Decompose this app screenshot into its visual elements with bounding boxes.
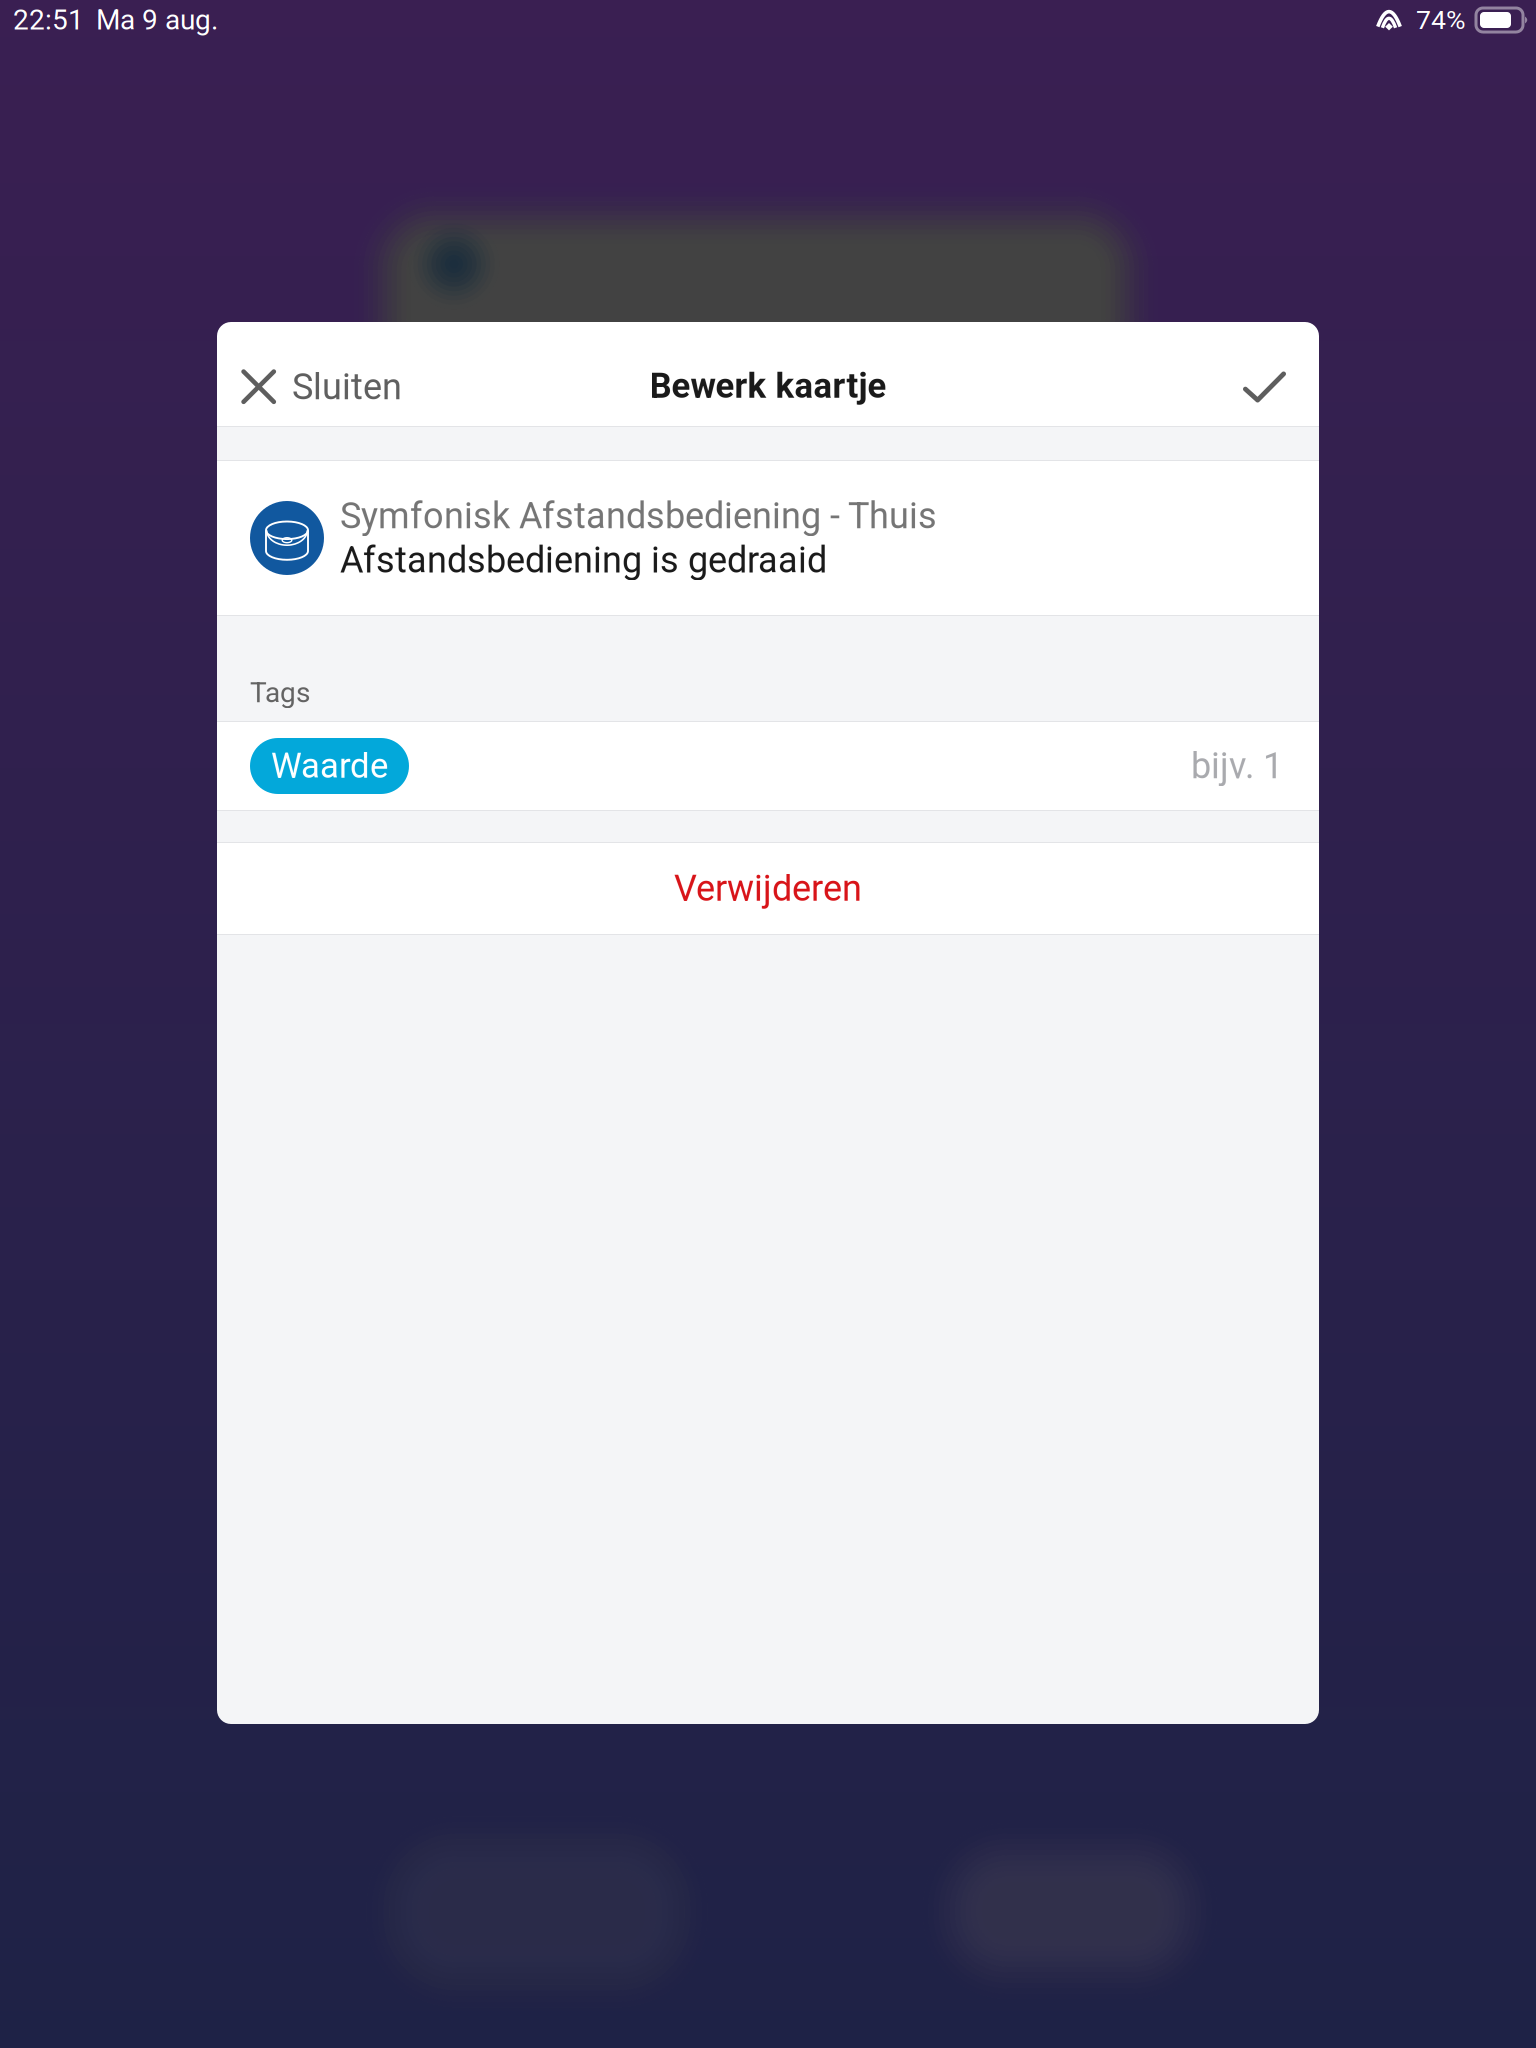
button[interactable]: Gereed — [1221, 322, 1319, 426]
staticText: Sluiten — [292, 366, 402, 408]
staticText: 22:51 — [13, 4, 84, 36]
staticText: Waarde — [271, 746, 388, 786]
staticText: Bewerk kaartje — [649, 366, 886, 406]
staticText: 74% — [1416, 4, 1466, 36]
button[interactable]: Verwijderen — [217, 843, 1319, 934]
button[interactable]: Sluiten — [217, 322, 418, 426]
staticText: Tags — [250, 676, 310, 709]
staticText: Symfonisk Afstandsbediening - Thuis — [340, 495, 937, 537]
button[interactable]: Waarde — [217, 722, 1319, 810]
staticText: bijv. 1 — [1191, 745, 1283, 787]
staticText: Ma 9 aug. — [96, 4, 218, 36]
staticText: Afstandsbediening is gedraaid — [340, 539, 827, 581]
staticText: Verwijderen — [674, 867, 862, 910]
